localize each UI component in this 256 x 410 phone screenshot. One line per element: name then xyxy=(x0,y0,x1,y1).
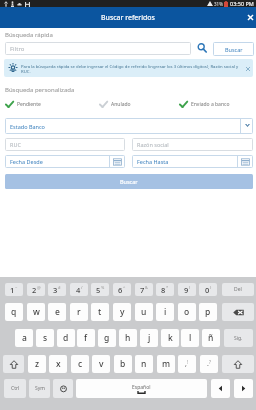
staticText: Búsqueda rápida xyxy=(5,31,53,39)
button[interactable]: a xyxy=(15,329,33,347)
staticText: . xyxy=(207,359,209,369)
button[interactable]: Mayúsculas xyxy=(222,355,254,373)
button[interactable]: s xyxy=(36,329,54,347)
button[interactable]: e xyxy=(48,303,66,321)
staticText: ) xyxy=(210,285,212,290)
staticText: Buscar xyxy=(225,46,243,53)
staticText: y xyxy=(120,306,125,318)
staticText: 31% xyxy=(214,1,223,7)
button[interactable]: k xyxy=(161,329,179,347)
staticText: f xyxy=(84,332,88,344)
button[interactable]: q xyxy=(5,303,23,321)
staticText: ñ xyxy=(208,332,214,344)
button[interactable]: j xyxy=(140,329,158,347)
button[interactable]: l xyxy=(181,329,199,347)
button[interactable]: Anulado xyxy=(99,100,131,109)
button[interactable]: w xyxy=(27,303,45,321)
button[interactable]: p xyxy=(199,303,217,321)
staticText: m xyxy=(162,358,171,370)
button[interactable]: 7 xyxy=(135,283,153,296)
button[interactable]: 8 xyxy=(156,283,174,296)
button[interactable]: Pendiente xyxy=(5,100,41,109)
button[interactable]: Enviado a banco xyxy=(179,100,230,109)
button[interactable]: u xyxy=(135,303,153,321)
button[interactable]: Ctrl xyxy=(4,379,26,398)
staticText: b xyxy=(120,358,126,370)
button[interactable]: Razón social xyxy=(132,138,253,151)
staticText: Razón social xyxy=(137,141,169,148)
button[interactable]: z xyxy=(28,355,46,373)
button[interactable]: , xyxy=(178,355,196,373)
staticText: e xyxy=(55,306,60,318)
button[interactable]: c xyxy=(71,355,89,373)
staticText: w xyxy=(33,306,40,318)
button[interactable]: o xyxy=(178,303,196,321)
staticText: o xyxy=(184,306,190,318)
button[interactable]: Sym xyxy=(29,379,50,398)
staticText: Fecha Hasta xyxy=(137,158,169,165)
button[interactable]: Derecha xyxy=(234,379,253,398)
staticText: % xyxy=(101,285,105,290)
button[interactable]: f xyxy=(77,329,95,347)
button[interactable]: i xyxy=(156,303,174,321)
button[interactable]: 6 xyxy=(113,283,131,296)
button[interactable]: m xyxy=(157,355,175,373)
button[interactable]: Retroceso xyxy=(222,303,254,321)
button[interactable]: Fecha Hasta xyxy=(132,155,253,168)
staticText: ? xyxy=(209,359,211,365)
staticText: n xyxy=(141,358,147,370)
staticText: ^ xyxy=(123,285,126,290)
button[interactable]: 1 xyxy=(5,283,23,296)
button[interactable]: 0 xyxy=(199,283,217,296)
button[interactable]: Buscar xyxy=(5,174,253,189)
staticText: Anulado xyxy=(111,101,131,108)
staticText: i xyxy=(164,306,167,318)
button[interactable]: g xyxy=(98,329,116,347)
staticText: c xyxy=(78,358,83,370)
button[interactable]: Buscar xyxy=(213,42,254,56)
button[interactable]: r xyxy=(70,303,88,321)
staticText: 2 xyxy=(32,285,37,295)
button[interactable]: 3 xyxy=(48,283,66,296)
button[interactable]: Cerrar xyxy=(245,7,256,28)
button[interactable]: Filtro xyxy=(5,42,191,55)
button[interactable]: b xyxy=(114,355,132,373)
button[interactable]: Estado Banco xyxy=(5,118,253,134)
staticText: Del xyxy=(234,286,242,293)
button[interactable]: n xyxy=(135,355,153,373)
button[interactable]: Izquierda xyxy=(211,379,230,398)
button[interactable]: . xyxy=(200,355,218,373)
button[interactable]: v xyxy=(92,355,110,373)
button[interactable]: RUC xyxy=(5,138,125,151)
staticText: k xyxy=(168,332,173,344)
button[interactable]: y xyxy=(113,303,131,321)
button[interactable]: Sig. xyxy=(224,329,253,347)
button[interactable]: Del xyxy=(222,283,254,296)
button[interactable]: 4 xyxy=(70,283,88,296)
button[interactable]: 2 xyxy=(27,283,45,296)
button[interactable]: Cerrar aviso xyxy=(242,63,253,74)
staticText: 03:50 PM xyxy=(230,0,254,7)
staticText: , xyxy=(185,359,187,369)
staticText: h xyxy=(125,332,131,344)
button[interactable]: 5 xyxy=(91,283,109,296)
staticText: t xyxy=(98,306,102,318)
staticText: z xyxy=(35,358,40,370)
button[interactable]: 9 xyxy=(178,283,196,296)
button[interactable]: Fecha Desde xyxy=(5,155,125,168)
button[interactable]: Buscar xyxy=(195,41,209,55)
button[interactable]: Emoji xyxy=(53,379,73,398)
button[interactable]: t xyxy=(91,303,109,321)
staticText: Búsqueda personalizada xyxy=(5,86,75,94)
button[interactable]: ñ xyxy=(202,329,220,347)
button[interactable]: h xyxy=(119,329,137,347)
button[interactable]: Mayúsculas xyxy=(3,355,24,373)
staticText: 3 xyxy=(53,285,58,295)
button[interactable]: x xyxy=(49,355,67,373)
staticText: * xyxy=(166,285,169,290)
button[interactable]: d xyxy=(57,329,75,347)
button[interactable]: Español xyxy=(76,379,207,398)
staticText: Buscar referidos xyxy=(101,13,155,23)
staticText: l xyxy=(189,332,192,344)
staticText: g xyxy=(104,332,110,344)
